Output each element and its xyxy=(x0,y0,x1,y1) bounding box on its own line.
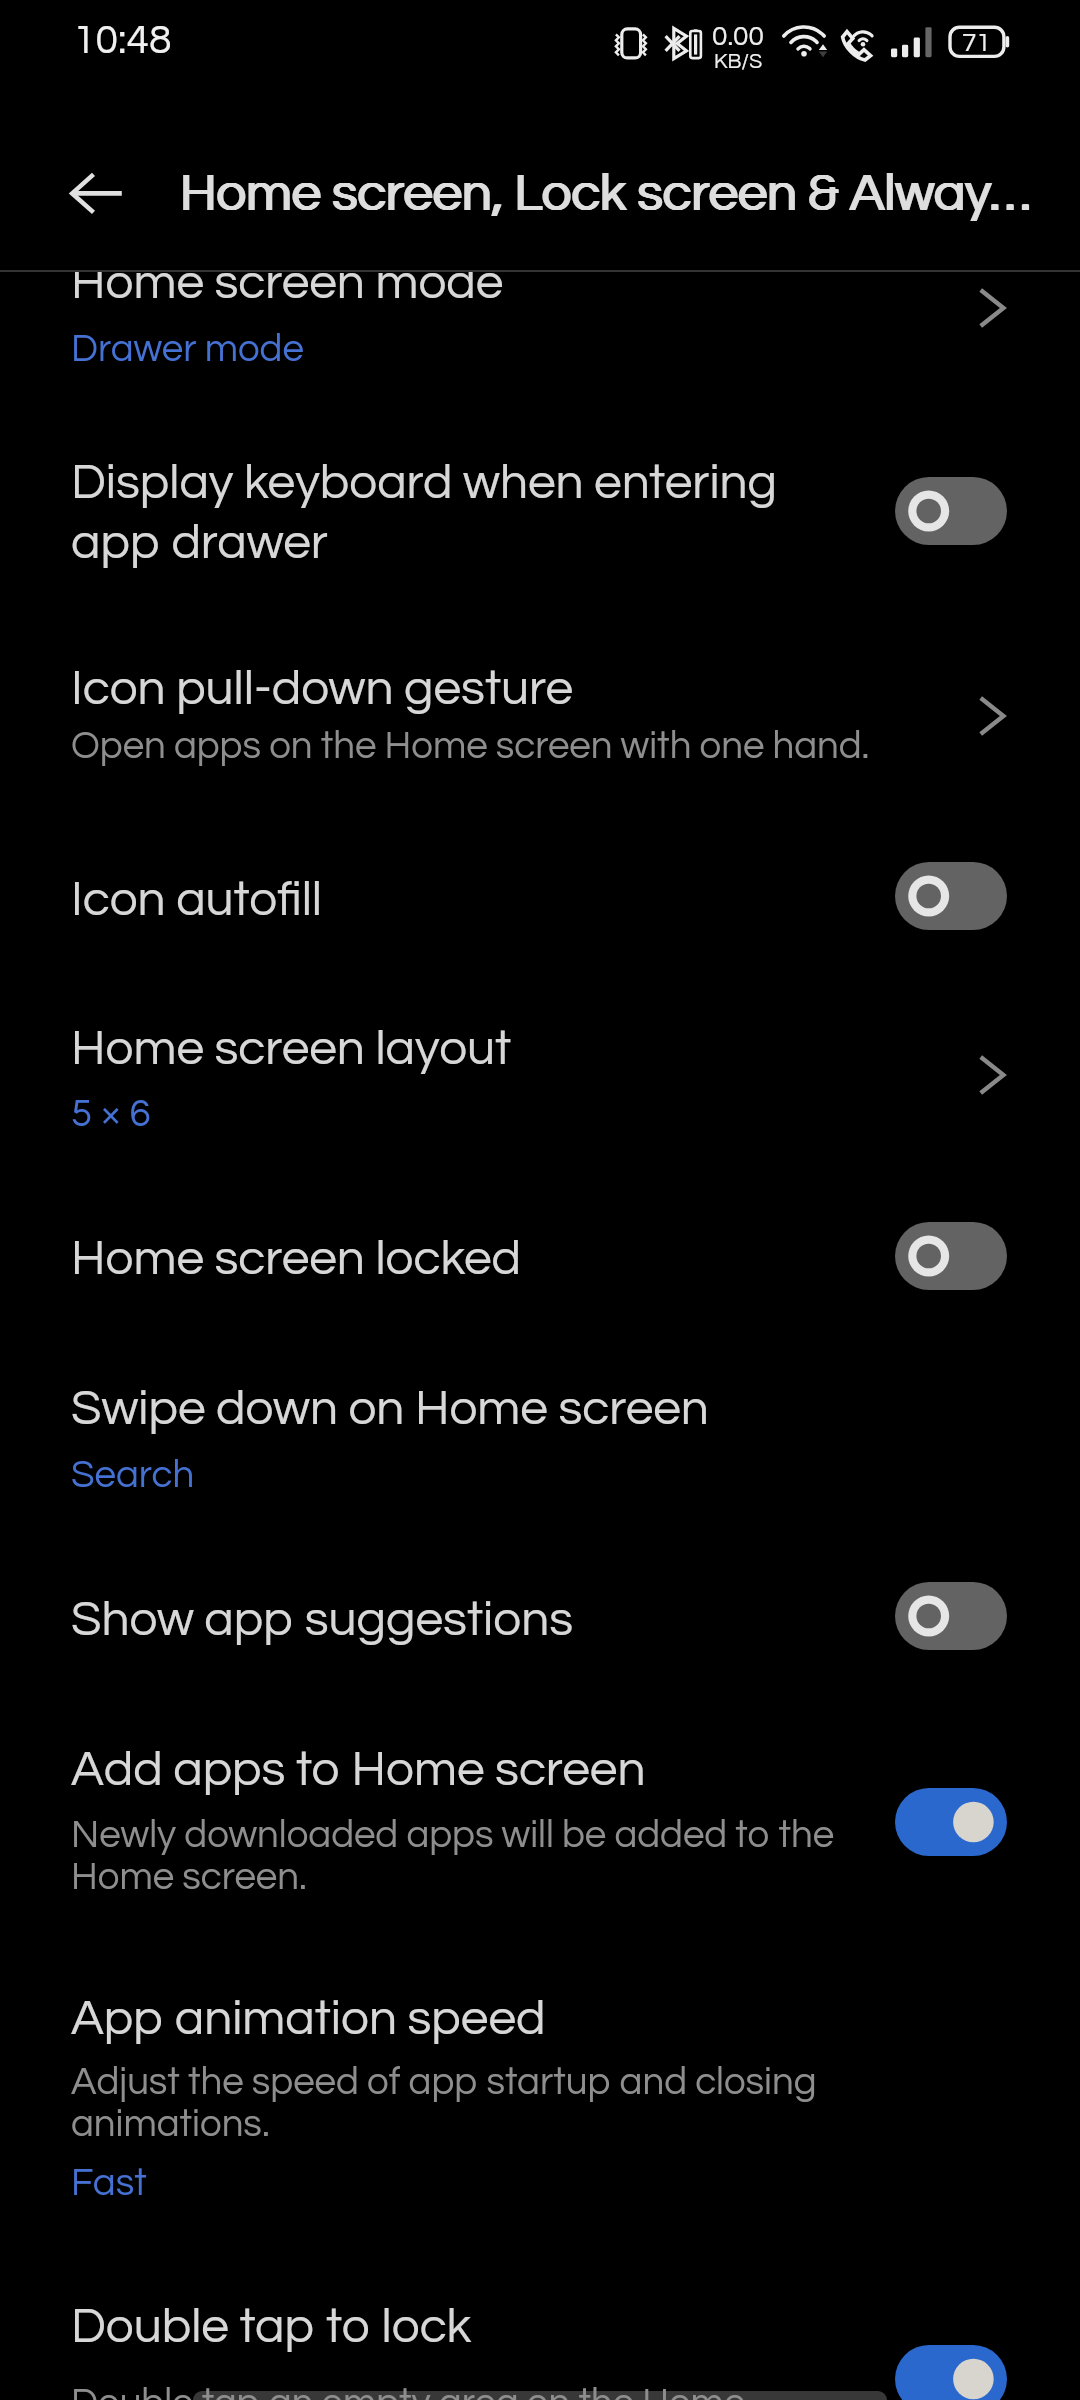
button[interactable]: App animation speed xyxy=(0,1963,1080,2240)
staticText: 5 × 6 xyxy=(71,1095,151,1135)
button[interactable]: Home screen layout xyxy=(0,993,1080,1165)
staticText: Newly downloaded apps will be added to t… xyxy=(71,1816,877,1898)
staticText: 71 xyxy=(962,30,991,57)
button[interactable]: Double tap to lock xyxy=(0,2271,1080,2400)
staticText: Fast xyxy=(71,2164,147,2204)
button[interactable]: Show app suggestions xyxy=(0,1564,1080,1700)
staticText: Open apps on the Home screen with one ha… xyxy=(71,727,877,767)
staticText: Home screen locked xyxy=(71,1233,877,1284)
staticText: Double tap an empty area on the Home xyxy=(71,2384,877,2400)
staticText: 10:48 xyxy=(73,19,172,61)
staticText: Icon autofill xyxy=(71,874,877,925)
staticText: Home screen mode xyxy=(71,257,877,308)
staticText: Show app suggestions xyxy=(71,1594,877,1645)
button[interactable]: Open xyxy=(949,682,1017,750)
staticText: Drawer mode xyxy=(71,330,304,370)
button[interactable]: Home screen mode xyxy=(0,227,1080,400)
button[interactable]: Icon autofill xyxy=(0,844,1080,975)
staticText: Icon pull-down gesture xyxy=(71,663,877,714)
staticText: Swipe down on Home screen xyxy=(71,1383,877,1434)
button[interactable]: Toggle off xyxy=(895,477,1007,545)
button[interactable]: Add apps to Home screen xyxy=(0,1714,1080,1930)
button[interactable]: Icon pull-down gesture xyxy=(0,633,1080,810)
staticText: KB/S xyxy=(714,51,763,73)
staticText: Home screen layout xyxy=(71,1023,877,1074)
staticText: Search xyxy=(71,1456,195,1496)
staticText: Home screen, Lock screen & Alway… xyxy=(180,167,1031,221)
button[interactable]: Back xyxy=(58,158,136,230)
button[interactable]: Display keyboard when entering app drawe… xyxy=(0,427,1080,610)
button[interactable]: Toggle off xyxy=(895,1582,1007,1650)
button[interactable]: Toggle off xyxy=(895,862,1007,930)
button[interactable]: Toggle off xyxy=(895,1222,1007,1290)
staticText: Add apps to Home screen xyxy=(71,1744,877,1795)
button[interactable]: Open xyxy=(949,1041,1017,1109)
button[interactable]: Toggle on xyxy=(895,1788,1007,1856)
staticText: Display keyboard when entering app drawe… xyxy=(71,457,877,568)
button[interactable]: Home screen locked xyxy=(0,1203,1080,1330)
staticText: Home screen, Lock screen & Alway… xyxy=(179,167,1030,221)
button[interactable]: Swipe down on Home screen xyxy=(0,1353,1080,1530)
staticText: Double tap to lock xyxy=(71,2301,877,2352)
staticText: Home screen, Lock screen & Alway… xyxy=(180,167,1031,221)
staticText: 0.00 xyxy=(712,22,764,51)
button[interactable]: Toggle on xyxy=(895,2345,1007,2400)
button[interactable]: Open xyxy=(949,274,1017,342)
staticText: App animation speed xyxy=(71,1993,877,2044)
staticText: Home screen, Lock screen & Alway… xyxy=(181,167,1032,221)
staticText: Adjust the speed of app startup and clos… xyxy=(71,2063,877,2145)
